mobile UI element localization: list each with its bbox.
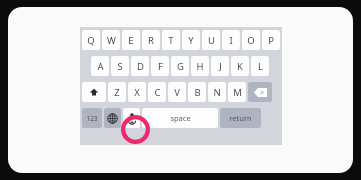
button[interactable]: W: [102, 30, 120, 50]
button[interactable]: U: [202, 30, 220, 50]
button[interactable]: S: [111, 56, 129, 76]
staticText: V: [174, 86, 180, 99]
staticText: C: [154, 86, 161, 99]
staticText: N: [213, 86, 221, 99]
staticText: F: [158, 60, 163, 73]
staticText: T: [168, 34, 174, 47]
button[interactable]: space: [142, 108, 218, 128]
staticText: P: [268, 34, 274, 47]
button[interactable]: K: [231, 56, 249, 76]
staticText: L: [258, 60, 263, 73]
staticText: K: [237, 60, 243, 73]
button[interactable]: return: [220, 108, 261, 128]
staticText: X: [134, 86, 140, 99]
button[interactable]: F: [151, 56, 169, 76]
button[interactable]: Delete: [248, 82, 272, 102]
button[interactable]: M: [228, 82, 246, 102]
button[interactable]: B: [188, 82, 206, 102]
staticText: I: [229, 34, 233, 47]
button[interactable]: O: [242, 30, 260, 50]
button[interactable]: A: [91, 56, 109, 76]
button[interactable]: X: [128, 82, 146, 102]
staticText: O: [247, 34, 255, 47]
button[interactable]: C: [148, 82, 166, 102]
button[interactable]: P: [262, 30, 280, 50]
staticText: Y: [188, 34, 194, 47]
staticText: space: [170, 113, 191, 123]
button[interactable]: Y: [182, 30, 200, 50]
button[interactable]: Q: [82, 30, 100, 50]
staticText: D: [137, 60, 144, 73]
button[interactable]: R: [142, 30, 160, 50]
staticText: B: [194, 86, 201, 99]
button[interactable]: N: [208, 82, 226, 102]
staticText: S: [117, 60, 123, 73]
button[interactable]: Change keyboard: [104, 108, 121, 128]
staticText: U: [208, 34, 215, 47]
button[interactable]: Dictation: [123, 108, 140, 128]
button[interactable]: G: [171, 56, 189, 76]
button[interactable]: D: [131, 56, 149, 76]
button[interactable]: J: [211, 56, 229, 76]
other: Dictation key highlighted: [121, 115, 150, 144]
button[interactable]: T: [162, 30, 180, 50]
button[interactable]: E: [122, 30, 140, 50]
button[interactable]: Shift: [82, 82, 106, 102]
button[interactable]: L: [251, 56, 269, 76]
staticText: R: [148, 34, 154, 47]
staticText: J: [219, 60, 222, 73]
staticText: M: [233, 86, 242, 99]
staticText: E: [128, 34, 134, 47]
staticText: Z: [114, 86, 120, 99]
staticText: W: [107, 34, 116, 47]
staticText: 123: [86, 114, 98, 123]
staticText: A: [97, 60, 104, 73]
staticText: return: [229, 113, 252, 123]
button[interactable]: 123: [82, 108, 102, 128]
button[interactable]: Z: [108, 82, 126, 102]
button[interactable]: I: [222, 30, 240, 50]
button[interactable]: H: [191, 56, 209, 76]
staticText: Q: [87, 34, 95, 47]
button[interactable]: V: [168, 82, 186, 102]
staticText: H: [196, 60, 204, 73]
staticText: G: [177, 60, 184, 73]
